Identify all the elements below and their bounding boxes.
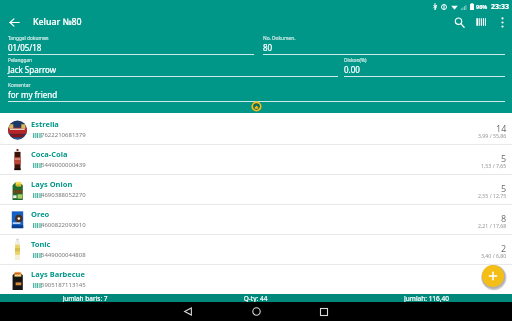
button[interactable]: Recents — [302, 302, 346, 321]
button[interactable]: Back — [5, 13, 23, 31]
staticText: 5905187113145 — [41, 281, 86, 289]
button[interactable]: Pelanggan — [8, 57, 338, 77]
staticText: for my friend — [8, 89, 58, 100]
staticText: Q-ty: 44 — [170, 294, 341, 302]
staticText: Keluar №80 — [33, 16, 82, 28]
staticText: 23:33 — [491, 2, 509, 12]
button[interactable]: Back — [166, 302, 210, 321]
button[interactable]: Lays Barbecue — [0, 265, 512, 294]
staticText: 80 — [263, 42, 273, 53]
button[interactable]: Komentar — [8, 82, 505, 102]
staticText: 4600822093010 — [41, 221, 86, 229]
staticText: 5 — [501, 152, 507, 164]
staticText: Tonic — [31, 239, 51, 249]
button[interactable]: More options — [494, 13, 510, 31]
button[interactable]: Search — [449, 13, 469, 31]
staticText: 96% — [476, 3, 488, 10]
staticText: Komentar — [8, 82, 31, 89]
staticText: 2,21 / 17,68 — [478, 222, 507, 229]
staticText: 14 — [496, 122, 507, 134]
button[interactable]: Estrella — [0, 115, 512, 145]
staticText: 5 — [501, 182, 507, 194]
staticText: 1,53 / 7,65 — [481, 162, 507, 169]
staticText: Coca-Cola — [31, 149, 68, 159]
staticText: Jumlah baris: 7 — [0, 294, 170, 302]
staticText: 2,55 / 12,75 — [478, 192, 507, 199]
staticText: 3,99 / 55,86 — [478, 132, 507, 139]
button[interactable]: Lays Onion — [0, 175, 512, 205]
staticText: 2 — [501, 242, 507, 254]
staticText: Pelanggan — [8, 57, 33, 64]
staticText: Lays Onion — [31, 179, 73, 189]
staticText: 3,40 / 6,80 — [481, 252, 507, 259]
staticText: Estrella — [31, 119, 59, 129]
button[interactable]: Add item — [480, 263, 506, 289]
staticText: 8 — [501, 212, 507, 224]
staticText: 01/05/18 — [8, 42, 42, 53]
button[interactable]: Tanggal dokumen — [8, 35, 254, 55]
button[interactable]: Oreo — [0, 205, 512, 235]
button[interactable]: Scan barcode — [472, 13, 492, 31]
button[interactable]: Collapse header — [251, 101, 262, 112]
staticText: 0.00 — [344, 64, 360, 75]
button[interactable]: Tonic — [0, 235, 512, 265]
button[interactable]: Coca-Cola — [0, 145, 512, 175]
staticText: No. Dokumen. — [263, 35, 296, 42]
button[interactable]: Home — [234, 302, 278, 321]
staticText: Lays Barbecue — [31, 269, 85, 279]
staticText: Oreo — [31, 209, 50, 219]
staticText: 5449000000439 — [41, 161, 86, 169]
button[interactable]: Diskon(%) — [344, 57, 505, 77]
staticText: Tanggal dokumen — [8, 35, 49, 42]
staticText: 4690388052270 — [41, 191, 86, 199]
staticText: Jumlah: 116,40 — [341, 294, 512, 302]
staticText: 7622210681379 — [41, 131, 86, 139]
staticText: Jack Sparrow — [8, 64, 57, 75]
staticText: Diskon(%) — [344, 57, 367, 64]
staticText: 5449000044808 — [41, 251, 86, 259]
button[interactable]: No. Dokumen. — [263, 35, 505, 55]
